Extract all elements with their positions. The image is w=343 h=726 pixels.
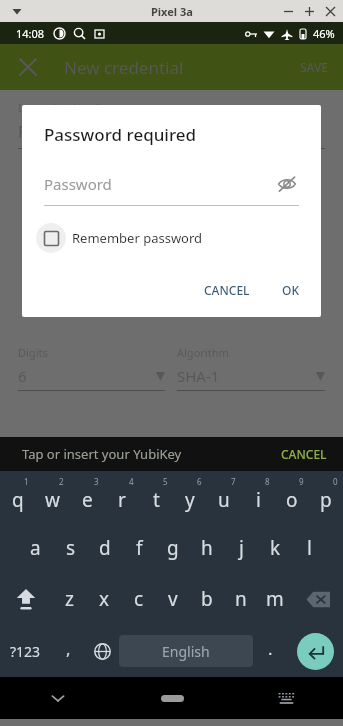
staticText: CANCEL [204,282,250,298]
button[interactable]: OK [270,273,311,307]
button[interactable]: 8 [241,471,275,522]
staticText: l [307,535,312,561]
staticText: g [167,535,179,561]
staticText: r [118,487,126,513]
staticText: k [270,535,281,561]
staticText: 6 [197,476,202,487]
button[interactable]: f [122,522,156,573]
staticText: d [99,535,111,561]
staticText: Remember password [72,229,203,247]
button[interactable]: Back [0,677,115,719]
button[interactable]: k [258,522,292,573]
staticText: f [136,535,143,561]
staticText: 14:08 [16,26,45,41]
button[interactable]: n [224,573,258,625]
staticText: Issuer (optional) [18,100,102,115]
staticText: z [65,586,74,612]
button[interactable]: 6 [173,471,207,522]
button[interactable]: d [88,522,122,573]
staticText: 0 [333,476,338,487]
staticText: Password [44,174,275,194]
staticText: y [185,487,195,513]
button[interactable]: m [258,573,292,625]
button[interactable]: Backspace [292,573,343,625]
button[interactable]: CANCEL [265,438,343,470]
button[interactable]: SAVE [286,49,343,85]
button[interactable]: Shift [0,573,52,625]
button[interactable]: . [253,625,287,677]
staticText: English [162,642,210,661]
button[interactable]: 7 [207,471,241,522]
button[interactable]: 2 [35,471,70,522]
staticText: 9 [299,476,304,487]
button[interactable]: Show password [275,172,299,196]
button[interactable]: z [52,573,87,625]
staticText: Password required [44,123,197,146]
staticText: s [66,535,76,561]
button[interactable]: 3 [70,471,105,522]
staticText: CANCEL [281,446,327,462]
staticText: 7 [231,476,236,487]
staticText: p [320,487,332,513]
button[interactable]: g [156,522,190,573]
staticText: SHA-1 [177,366,316,386]
button[interactable]: Enter [297,633,334,670]
button[interactable]: English [119,635,253,667]
button[interactable]: h [190,522,224,573]
staticText: b [201,586,213,612]
button[interactable]: Close [6,45,50,89]
button[interactable]: s [53,522,88,573]
button[interactable]: 0 [309,471,343,522]
staticText: o [286,487,298,513]
button[interactable]: l [292,522,326,573]
button[interactable]: a [18,522,53,573]
button[interactable]: Hide keyboard [229,677,343,719]
button[interactable]: Change language [85,625,119,677]
staticText: 1 [24,476,29,487]
button[interactable]: b [190,573,224,625]
button[interactable]: Remember password [36,223,213,253]
button[interactable]: 5 [139,471,173,522]
staticText: 8 [265,476,270,487]
staticText: 3 [94,476,99,487]
staticText: n [235,586,247,612]
button[interactable]: c [122,573,156,625]
staticText: 2 [59,476,64,487]
staticText: Pixel 3a [151,4,193,19]
staticText: c [134,586,144,612]
staticText: , [66,637,71,660]
staticText: 46% [313,26,335,41]
button[interactable]: j [224,522,258,573]
button[interactable]: 1 [0,471,35,522]
staticText: 4 [129,476,134,487]
staticText: u [218,487,230,513]
button[interactable]: , [51,625,85,677]
staticText: a [30,535,41,561]
staticText: ProtonMail [18,121,101,143]
staticText: q [12,487,24,513]
button[interactable]: Password [44,172,299,206]
staticText: w [45,487,60,513]
button[interactable]: x [87,573,122,625]
staticText: e [82,487,93,513]
staticText: . [268,637,273,660]
button[interactable]: 4 [105,471,139,522]
button[interactable]: ?123 [0,625,51,677]
button[interactable]: 9 [275,471,309,522]
staticText: 5 [163,476,168,487]
staticText: x [99,586,110,612]
staticText: OK [282,282,299,298]
staticText: i [256,487,261,513]
button[interactable]: Home [115,677,229,719]
button[interactable]: CANCEL [192,273,262,307]
staticText: v [168,586,178,612]
staticText: j [239,535,244,561]
staticText: Algorithm [177,345,229,360]
staticText: ?123 [10,642,41,661]
staticText: New credential [64,56,184,79]
staticText: Digits [18,345,48,360]
button[interactable]: v [156,573,190,625]
staticText: h [201,535,213,561]
staticText: Tap or insert your YubiKey [22,445,182,463]
